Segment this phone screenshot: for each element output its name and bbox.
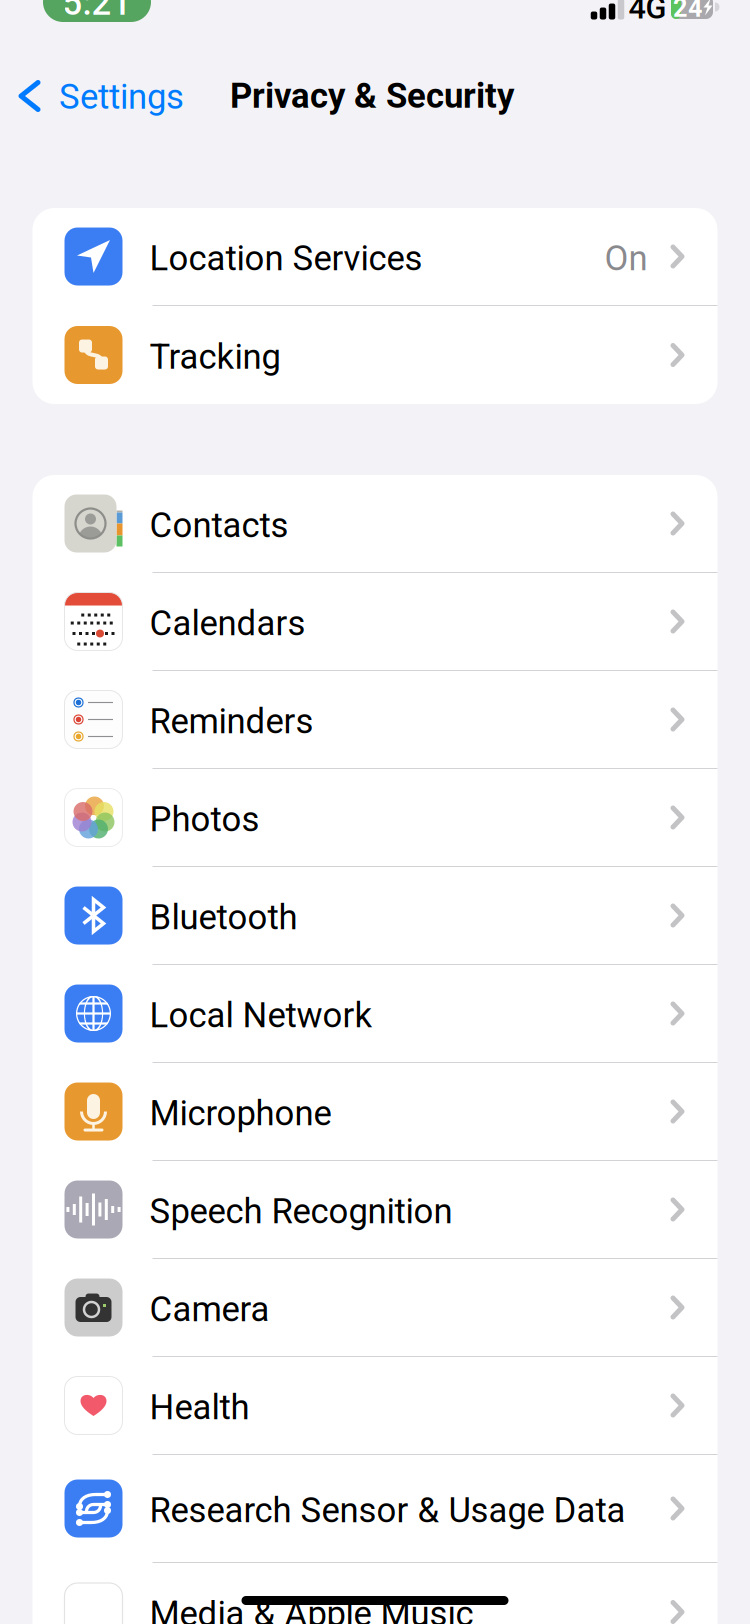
- staticText: Research Sensor & Usage Data: [149, 1490, 625, 1531]
- staticText: Microphone: [149, 1093, 331, 1134]
- button[interactable]: Local Network: [32, 965, 717, 1063]
- button[interactable]: Media & Apple Music: [32, 1563, 717, 1624]
- staticText: 4G: [628, 0, 666, 26]
- button[interactable]: Health: [32, 1357, 717, 1455]
- staticText: Photos: [149, 799, 259, 840]
- button[interactable]: Speech Recognition: [32, 1161, 717, 1259]
- staticText: Media & Apple Music: [149, 1594, 473, 1624]
- staticText: Health: [149, 1387, 249, 1428]
- button[interactable]: Tracking: [32, 306, 717, 404]
- staticText: Speech Recognition: [149, 1191, 452, 1232]
- staticText: Camera: [149, 1289, 269, 1330]
- staticText: 5:21: [62, 0, 131, 23]
- button[interactable]: Microphone: [32, 1063, 717, 1161]
- staticText: Privacy & Security: [230, 76, 514, 116]
- button[interactable]: Settings: [0, 76, 184, 116]
- staticText: Calendars: [149, 603, 305, 644]
- button[interactable]: Location Services: [32, 208, 717, 306]
- staticText: Tracking: [149, 337, 280, 377]
- staticText: Settings: [59, 77, 184, 117]
- button[interactable]: Bluetooth: [32, 867, 717, 965]
- staticText: Location Services: [149, 238, 422, 279]
- button[interactable]: Contacts: [32, 475, 717, 573]
- staticText: Bluetooth: [149, 897, 297, 938]
- staticText: 24: [673, 0, 703, 23]
- button[interactable]: Research Sensor & Usage Data: [32, 1455, 717, 1563]
- staticText: Reminders: [149, 701, 313, 742]
- button[interactable]: Camera: [32, 1259, 717, 1357]
- staticText: On: [604, 238, 647, 279]
- button[interactable]: Calendars: [32, 573, 717, 671]
- staticText: Local Network: [149, 995, 372, 1036]
- button[interactable]: Photos: [32, 769, 717, 867]
- button[interactable]: Reminders: [32, 671, 717, 769]
- staticText: Contacts: [149, 505, 288, 546]
